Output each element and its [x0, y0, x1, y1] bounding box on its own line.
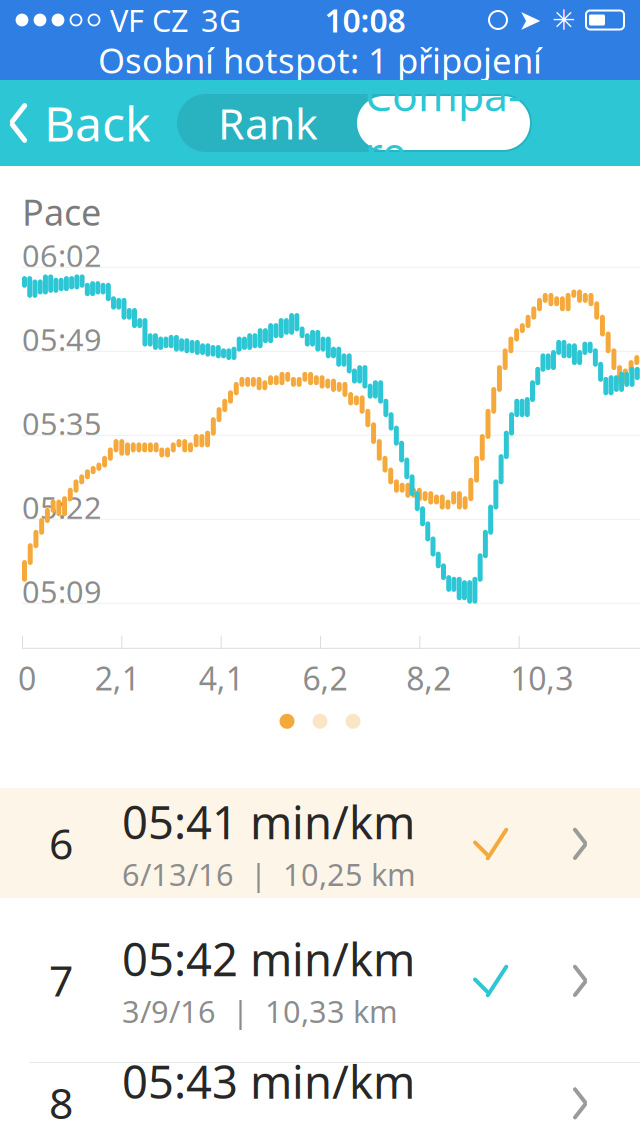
staticText: 05:22 [22, 487, 102, 528]
button[interactable]: Compare [357, 96, 530, 150]
staticText: 6/13/16 | 10,25 km [122, 854, 416, 894]
staticText: 10:08 [324, 0, 405, 41]
staticText: 05:49 [22, 319, 102, 360]
staticText: Compare [365, 66, 522, 180]
staticText: VF CZ [110, 0, 189, 40]
staticText: 6 [49, 815, 73, 871]
staticText: 06:02 [22, 235, 102, 276]
staticText: Rank [218, 95, 318, 151]
button[interactable]: 7 [0, 898, 640, 1062]
staticText: 8 [49, 1074, 73, 1131]
staticText: ➤ [518, 4, 541, 36]
staticText: Osobní hotspot: 1 připojení [98, 37, 542, 83]
staticText: 3/9/16 | 10,33 km [122, 991, 398, 1031]
staticText: 10,3 [510, 657, 573, 699]
button[interactable]: 6 [0, 788, 640, 898]
staticText: 8,2 [406, 657, 451, 699]
staticText: 05:35 [22, 403, 102, 444]
staticText: 6,2 [302, 657, 347, 699]
staticText: 4,1 [199, 657, 244, 699]
staticText: 2,1 [95, 657, 140, 699]
staticText: 05:09 [22, 571, 102, 612]
staticText: 3G [201, 0, 241, 40]
button[interactable]: Rank [179, 94, 357, 152]
staticText: 7 [49, 952, 73, 1008]
staticText: 0 [18, 657, 36, 699]
staticText: 05:42 min/km [122, 928, 415, 989]
button[interactable]: Back [0, 80, 159, 166]
staticText: Pace [22, 188, 101, 236]
staticText: 05:43 min/km [122, 1051, 415, 1111]
staticText: ✳ [552, 4, 575, 36]
staticText: Back [44, 91, 151, 155]
button[interactable]: 8 [0, 1062, 640, 1136]
staticText: 05:41 min/km [122, 791, 415, 852]
